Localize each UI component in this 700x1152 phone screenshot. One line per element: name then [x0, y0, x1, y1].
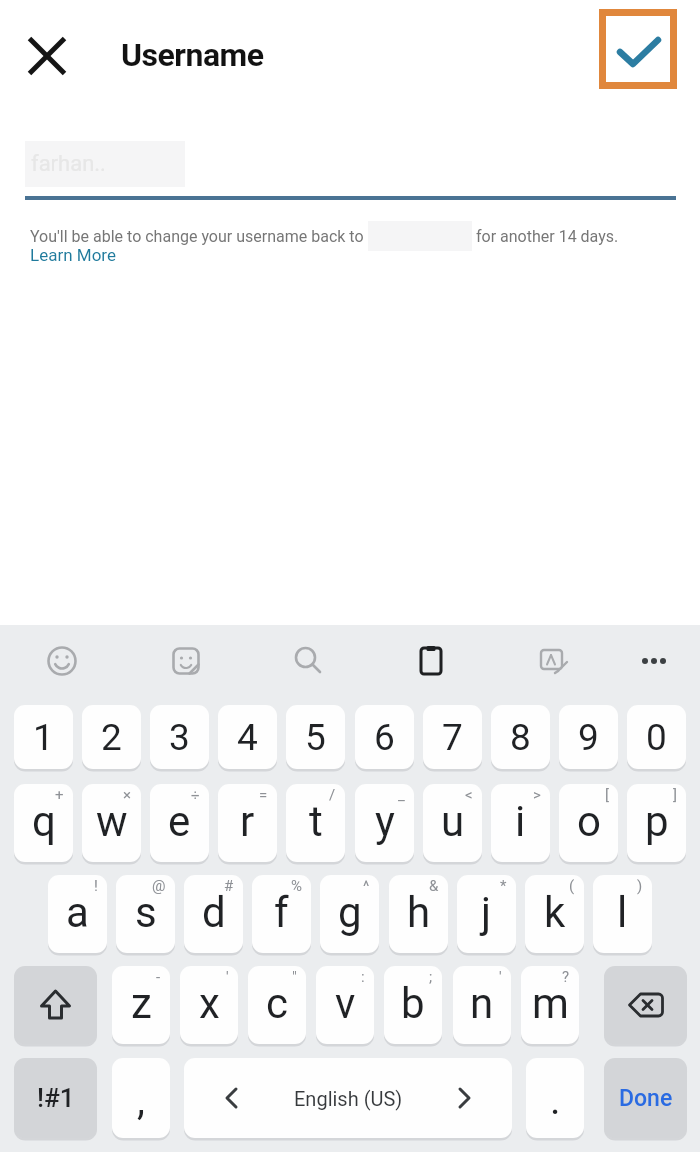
staticText: 4 [237, 716, 258, 759]
staticText: English (US) [294, 1087, 403, 1110]
staticText: n [470, 979, 494, 1028]
button[interactable] [285, 637, 333, 685]
button[interactable]: n [453, 966, 511, 1044]
button[interactable]: u [423, 784, 482, 862]
button[interactable]: 8 [491, 705, 550, 769]
staticText: 3 [169, 716, 190, 759]
button[interactable] [162, 637, 210, 685]
staticText: _ [398, 786, 405, 804]
button[interactable]: !#1 [14, 1058, 97, 1138]
staticText: ( [569, 877, 575, 895]
staticText: d [202, 888, 226, 937]
button[interactable]: l [593, 875, 652, 953]
staticText: Done [619, 1085, 673, 1112]
staticText: f [274, 888, 289, 937]
button[interactable]: d [184, 875, 243, 953]
button[interactable]: 0 [627, 705, 686, 769]
staticText: for another 14 days. [472, 227, 619, 246]
staticText: , [137, 1077, 145, 1124]
button[interactable]: i [491, 784, 550, 862]
staticText: > [533, 786, 541, 804]
button[interactable]: r [218, 784, 277, 862]
staticText: !#1 [37, 1083, 75, 1113]
staticText: c [266, 979, 288, 1028]
button[interactable]: z [112, 966, 170, 1044]
staticText: v [335, 979, 356, 1028]
staticText: = [259, 786, 268, 804]
staticText: 9 [578, 716, 599, 759]
button[interactable]: . [526, 1058, 584, 1138]
button[interactable]: 7 [423, 705, 482, 769]
button[interactable]: 2 [82, 705, 141, 769]
button[interactable]: p [627, 784, 686, 862]
staticText: t [309, 797, 323, 846]
button[interactable] [630, 637, 678, 685]
button[interactable]: a [48, 875, 107, 953]
staticText: & [429, 877, 439, 895]
button[interactable]: h [389, 875, 448, 953]
staticText: [ [605, 786, 609, 804]
button[interactable]: English (US) [184, 1058, 512, 1138]
staticText: ] [673, 786, 677, 804]
button[interactable]: 4 [218, 705, 277, 769]
button[interactable]: o [559, 784, 618, 862]
staticText: × [123, 786, 132, 804]
button[interactable]: q [14, 784, 73, 862]
button[interactable]: Learn More [30, 245, 116, 265]
button[interactable]: f [252, 875, 311, 953]
staticText: Learn More [30, 245, 116, 265]
staticText: h [407, 888, 431, 937]
staticText: - [156, 968, 161, 986]
staticText: l [617, 888, 628, 937]
staticText: ' [226, 968, 229, 986]
button[interactable]: v [316, 966, 374, 1044]
button[interactable]: m [521, 966, 579, 1044]
button[interactable] [604, 966, 687, 1044]
button[interactable]: Done [604, 1058, 687, 1138]
staticText: u [441, 797, 465, 846]
staticText: s [135, 888, 157, 937]
staticText: 2 [101, 716, 122, 759]
staticText: r [240, 797, 255, 846]
button[interactable] [599, 9, 677, 89]
button[interactable]: 6 [355, 705, 414, 769]
button[interactable]: 3 [150, 705, 209, 769]
button[interactable]: 1 [14, 705, 73, 769]
staticText: 7 [442, 716, 463, 759]
button[interactable]: x [180, 966, 238, 1044]
button[interactable]: 9 [559, 705, 618, 769]
staticText: 0 [646, 716, 667, 759]
button[interactable]: y [355, 784, 414, 862]
staticText: x [199, 979, 220, 1028]
staticText: ) [637, 877, 643, 895]
button[interactable] [407, 637, 455, 685]
button[interactable]: , [112, 1058, 170, 1138]
button[interactable]: k [525, 875, 584, 953]
staticText: @ [152, 877, 166, 895]
button[interactable]: t [286, 784, 345, 862]
staticText: z [131, 979, 152, 1028]
staticText: You'll be able to change your username b… [30, 227, 368, 246]
button[interactable]: b [384, 966, 442, 1044]
staticText: o [577, 797, 601, 846]
button[interactable]: c [248, 966, 306, 1044]
button[interactable]: e [150, 784, 209, 862]
button[interactable]: g [320, 875, 379, 953]
staticText: < [465, 786, 473, 804]
button[interactable] [14, 966, 97, 1044]
staticText: farhan.. [31, 151, 106, 177]
button[interactable] [38, 637, 86, 685]
staticText: i [515, 797, 526, 846]
staticText: q [32, 797, 56, 846]
button[interactable]: w [82, 784, 141, 862]
staticText: 5 [305, 716, 326, 759]
staticText: k [544, 888, 566, 937]
staticText: g [338, 888, 362, 937]
button[interactable]: s [116, 875, 175, 953]
button[interactable]: j [457, 875, 516, 953]
staticText: a [66, 888, 89, 937]
button[interactable]: 5 [286, 705, 345, 769]
button[interactable] [22, 32, 72, 80]
button[interactable] [530, 637, 578, 685]
staticText: % [291, 877, 302, 895]
